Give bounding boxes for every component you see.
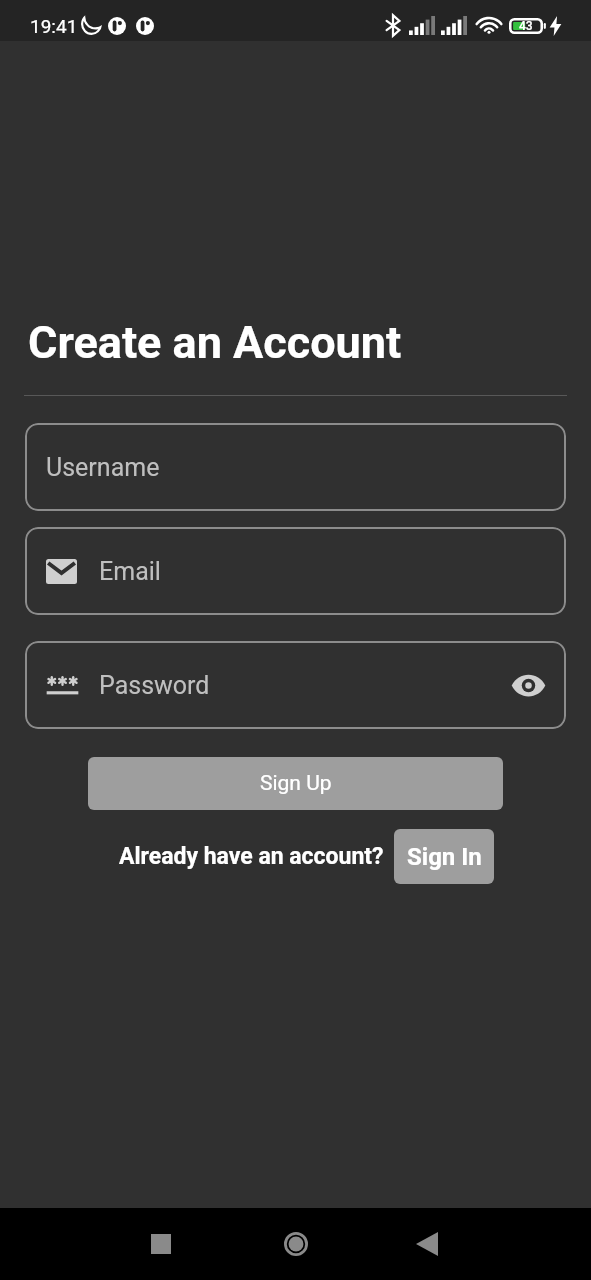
staticText: Sign Up <box>260 771 332 796</box>
button[interactable]: Sign In <box>394 829 494 884</box>
button[interactable]: Back <box>403 1220 451 1268</box>
button[interactable]: Sign Up <box>88 757 503 810</box>
button[interactable]: Home <box>272 1220 320 1268</box>
button[interactable]: Password <box>25 641 566 729</box>
staticText: 19:41 <box>30 15 78 37</box>
staticText: 43 <box>519 19 533 33</box>
staticText: Password <box>99 671 210 700</box>
staticText: Create an Account <box>28 316 402 369</box>
button[interactable]: Recent apps <box>137 1220 185 1268</box>
staticText: Username <box>46 453 160 482</box>
button[interactable]: Show password <box>506 663 550 707</box>
staticText: Already have an account? <box>119 843 384 870</box>
staticText: Sign In <box>407 843 482 871</box>
button[interactable]: Email <box>25 527 566 615</box>
button[interactable]: Username <box>25 423 566 511</box>
staticText: Email <box>99 557 161 586</box>
